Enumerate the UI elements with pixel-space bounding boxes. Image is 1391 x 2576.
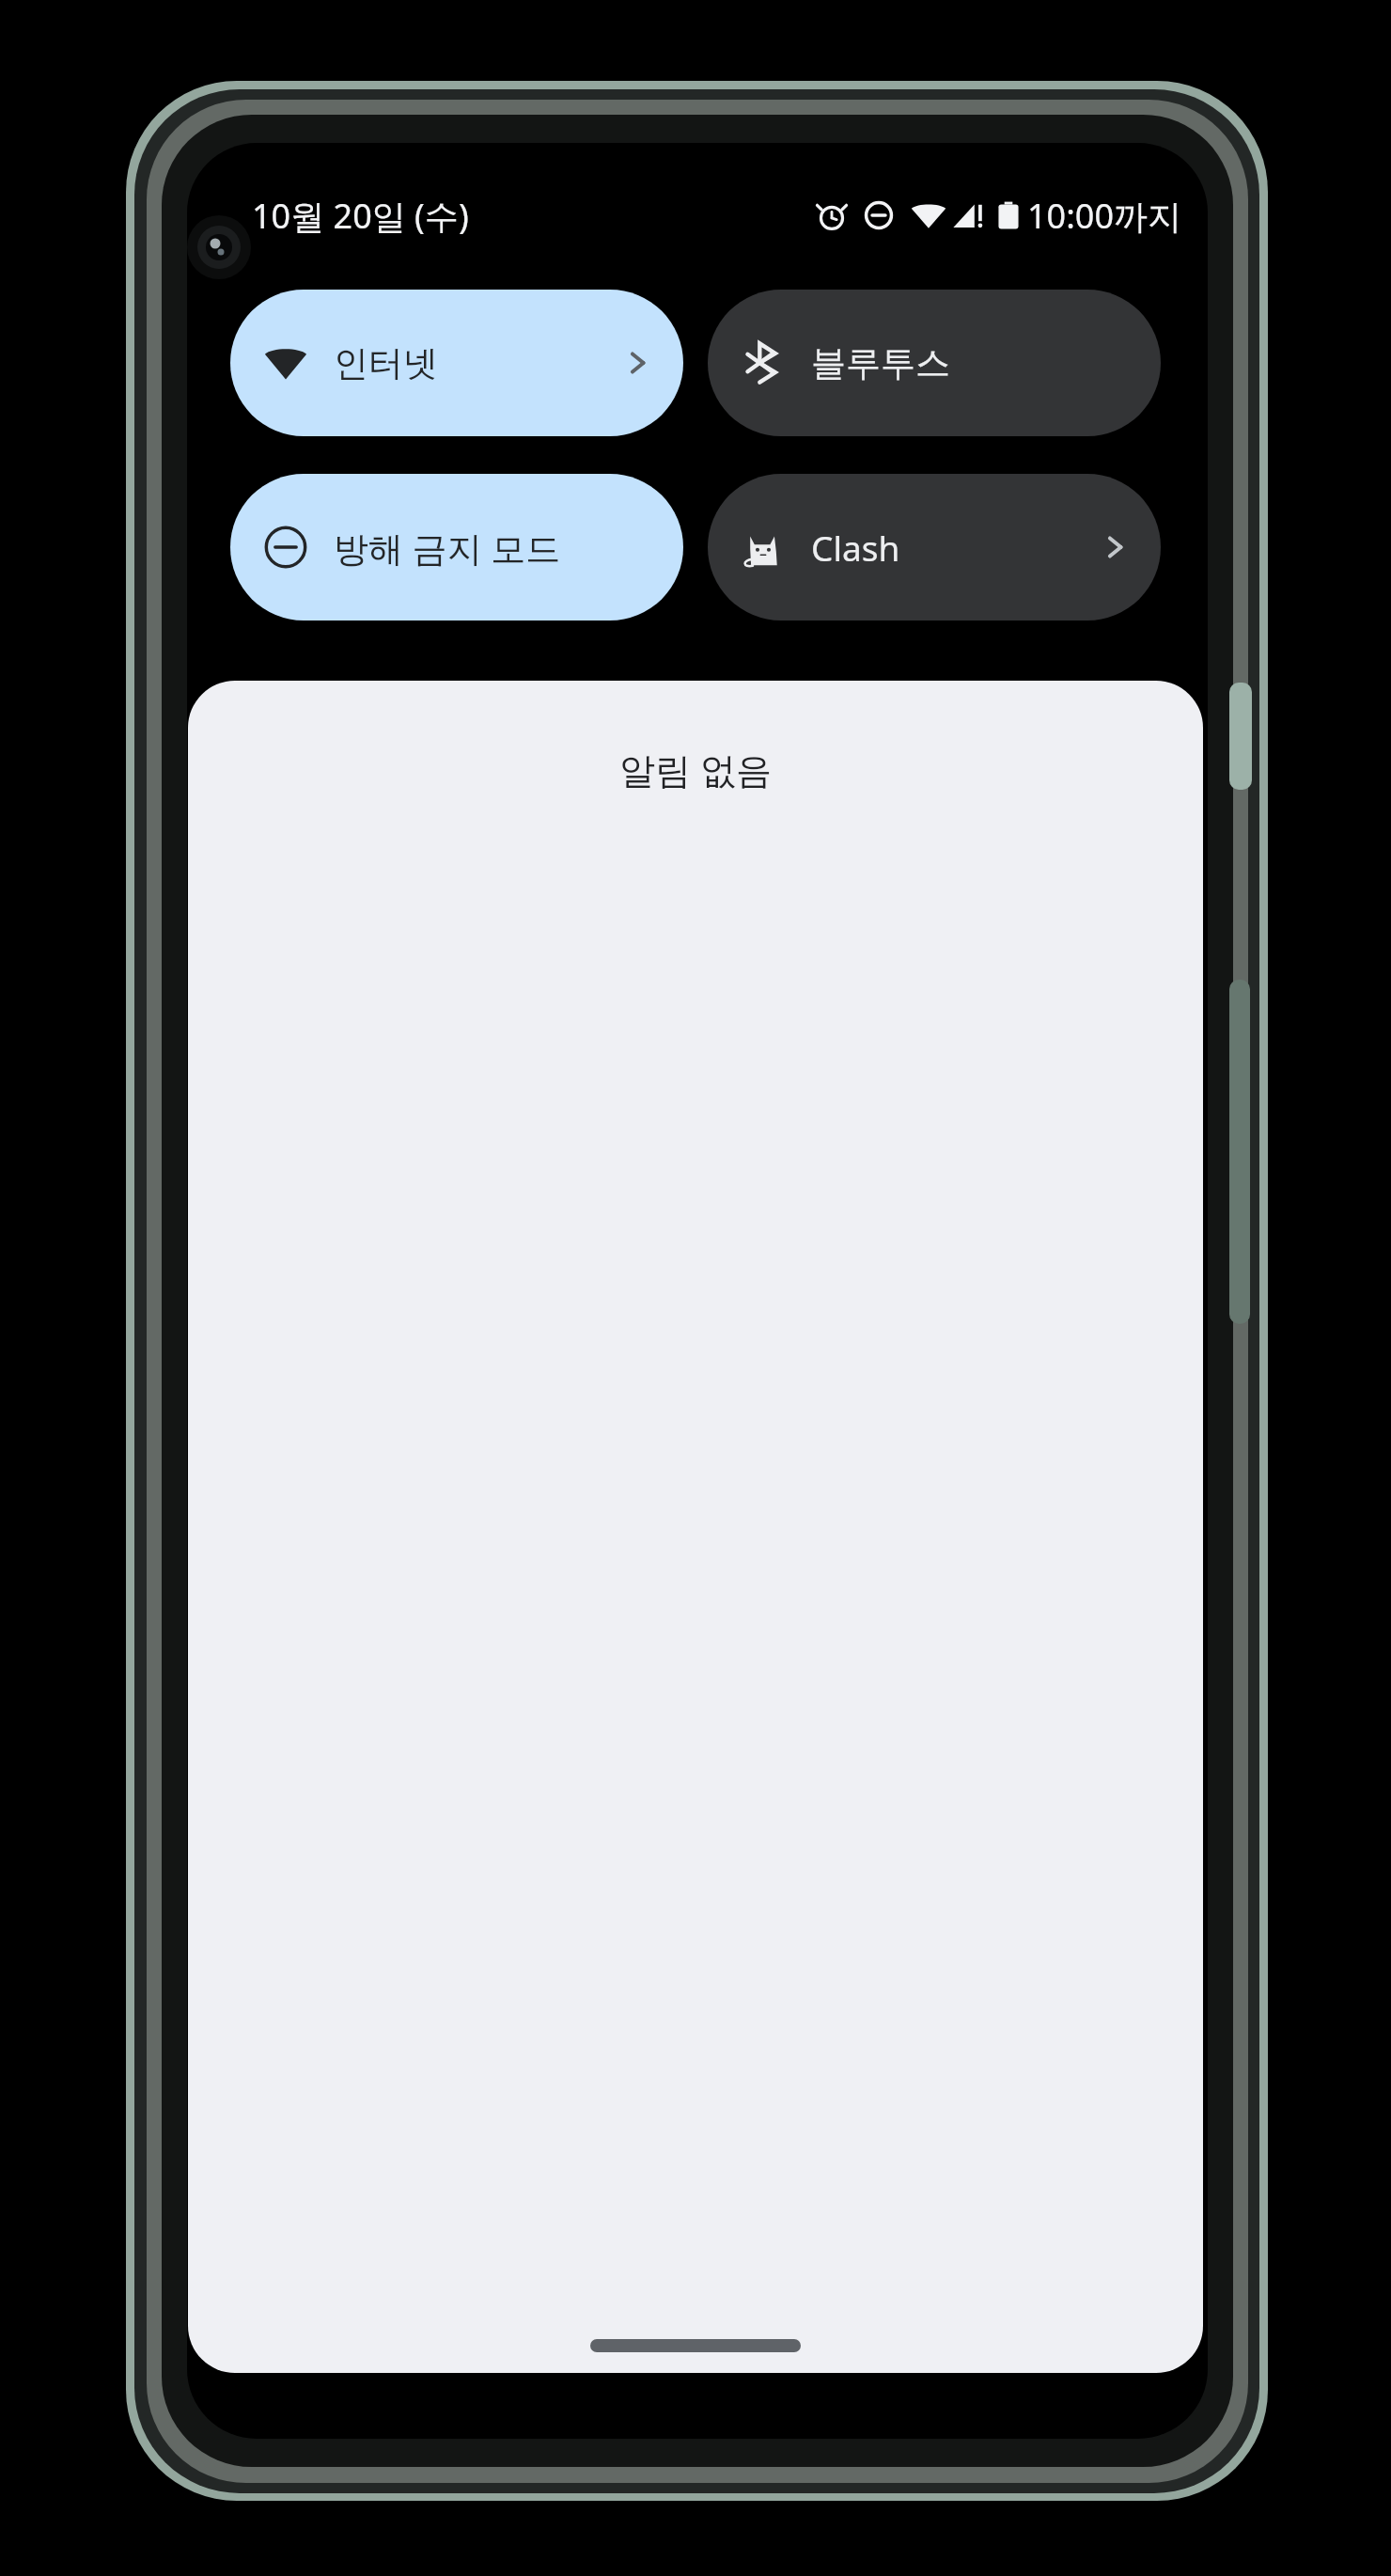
staticText: 방해 금지 모드 bbox=[334, 524, 561, 572]
button[interactable]: Home bbox=[590, 2339, 801, 2352]
button[interactable]: 블루투스 bbox=[708, 290, 1161, 436]
button[interactable]: Clash bbox=[708, 474, 1161, 620]
staticText: 블루투스 bbox=[811, 341, 950, 385]
button[interactable]: 방해 금지 모드 bbox=[230, 474, 683, 620]
staticText: 10:00까지 bbox=[1027, 193, 1182, 239]
button[interactable]: 인터넷 bbox=[230, 290, 683, 436]
staticText: 알림 없음 bbox=[619, 745, 772, 793]
staticText: Clash bbox=[811, 524, 900, 571]
staticText: 10월 20일 (수) bbox=[252, 193, 469, 239]
staticText: 인터넷 bbox=[334, 341, 438, 385]
